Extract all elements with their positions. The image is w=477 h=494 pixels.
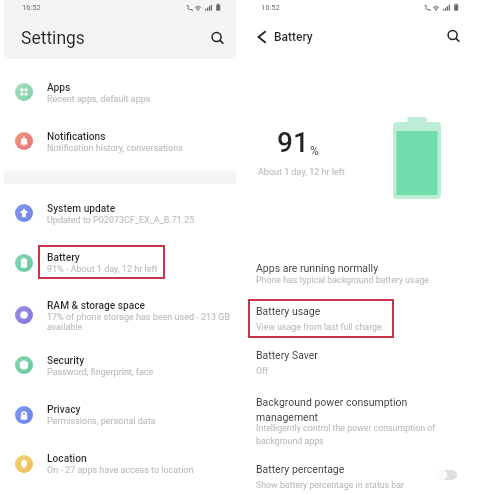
button[interactable]	[0, 352, 239, 378]
button[interactable]: Battery percentage toggle	[437, 470, 457, 480]
staticText: Privacy	[47, 404, 81, 416]
staticText: Recent apps, default apps	[47, 94, 151, 105]
staticText: Updated to P02073CF_EX_A_B.71.25	[47, 215, 195, 226]
button[interactable]	[239, 301, 477, 335]
staticText: About 1 day, 12 hr left	[258, 167, 345, 178]
staticText: Notifications	[47, 131, 106, 143]
staticText: Security	[47, 355, 85, 367]
staticText: Intelligently control the power consumpt…	[256, 423, 436, 433]
button[interactable]	[239, 459, 477, 493]
staticText: Off	[256, 366, 269, 376]
staticText: 17% of phone storage has been used - 213…	[47, 312, 231, 323]
staticText: On - 27 apps have access to location	[47, 465, 194, 476]
staticText: System update	[47, 203, 116, 215]
staticText: Permissions, personal data	[47, 416, 156, 427]
staticText: 91	[277, 126, 309, 159]
staticText: %	[310, 144, 319, 158]
staticText: Show battery percentage in status bar	[256, 480, 405, 490]
button[interactable]	[239, 346, 477, 380]
staticText: 91% - About 1 day, 12 hr left	[47, 264, 158, 275]
staticText: 16:52	[22, 3, 41, 12]
button[interactable]	[0, 128, 239, 154]
staticText: 16:52	[261, 3, 280, 12]
staticText: Battery	[47, 252, 80, 264]
button[interactable]	[0, 302, 239, 328]
staticText: Battery	[274, 30, 313, 44]
button[interactable]	[0, 79, 239, 105]
staticText: background apps	[256, 436, 324, 446]
staticText: Settings	[21, 28, 85, 49]
staticText: Battery Saver	[256, 349, 318, 361]
button[interactable]: Search	[203, 24, 231, 52]
staticText: Background power consumption	[256, 396, 408, 408]
button[interactable]: Back	[250, 25, 274, 49]
staticText: Apps	[47, 82, 71, 94]
staticText: RAM & storage space	[47, 300, 145, 312]
staticText: available	[47, 322, 83, 333]
staticText: management	[256, 411, 318, 423]
button[interactable]	[0, 402, 239, 428]
button[interactable]	[0, 451, 239, 477]
button[interactable]: Search	[439, 22, 467, 50]
staticText: Phone has typical background battery usa…	[256, 275, 430, 285]
staticText: Apps are running normally	[256, 262, 379, 274]
button[interactable]	[0, 200, 239, 226]
staticText: Battery percentage	[256, 463, 345, 475]
staticText: Notification history, conversations	[47, 143, 183, 154]
staticText: View usage from last full charge	[256, 322, 382, 332]
staticText: Location	[47, 453, 87, 465]
staticText: Password, fingerprint, face	[47, 367, 154, 378]
button[interactable]	[239, 259, 477, 293]
staticText: Battery usage	[256, 305, 321, 317]
button[interactable]	[239, 393, 477, 427]
button[interactable]	[0, 250, 239, 276]
